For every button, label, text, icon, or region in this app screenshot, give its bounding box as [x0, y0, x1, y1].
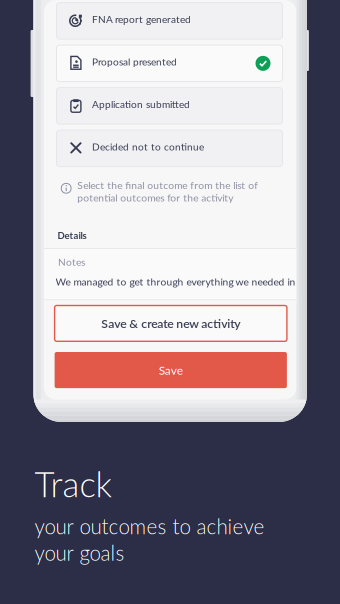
staticText: Select the final outcome from the list o… [77, 179, 257, 204]
button[interactable]: Save & create new activity [55, 305, 287, 341]
staticText: Application submitted [92, 98, 190, 110]
button[interactable]: Proposal presented [56, 45, 282, 82]
staticText: Track [34, 463, 112, 505]
button[interactable]: Application submitted [56, 88, 282, 124]
button[interactable]: Decided not to continue [56, 130, 282, 167]
staticText: FNA report generated [92, 13, 191, 25]
staticText: your outcomes to achieve [34, 514, 264, 539]
staticText: Save [159, 363, 183, 377]
button[interactable]: FNA report generated [56, 3, 282, 39]
button[interactable]: Save [55, 352, 287, 388]
staticText: We managed to get through everything we … [55, 275, 295, 288]
staticText: Proposal presented [92, 55, 177, 68]
staticText: your goals [34, 540, 124, 565]
staticText: Decided not to continue [92, 140, 204, 153]
staticText: Save & create new activity [101, 316, 240, 331]
staticText: Notes [58, 256, 85, 268]
staticText: Details [58, 230, 87, 241]
